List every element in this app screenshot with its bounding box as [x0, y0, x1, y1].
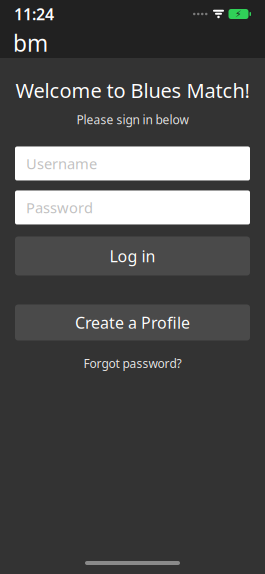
staticText: Username — [26, 154, 97, 173]
staticText: bm — [13, 28, 48, 58]
button[interactable]: Blues Match home — [9, 26, 52, 60]
staticText: 11:24 — [14, 3, 54, 25]
staticText: Forgot password? — [83, 355, 181, 371]
button[interactable]: Create a Profile — [15, 304, 250, 340]
staticText: Welcome to Blues Match! — [15, 77, 249, 104]
staticText: Password — [26, 198, 93, 217]
staticText: Please sign in below — [76, 112, 188, 127]
staticText: Create a Profile — [75, 312, 190, 333]
button[interactable]: Log in — [15, 236, 250, 275]
staticText: Log in — [109, 245, 155, 267]
button[interactable]: Forgot password? — [75, 351, 189, 375]
staticText: ⚡︎ — [235, 9, 242, 19]
